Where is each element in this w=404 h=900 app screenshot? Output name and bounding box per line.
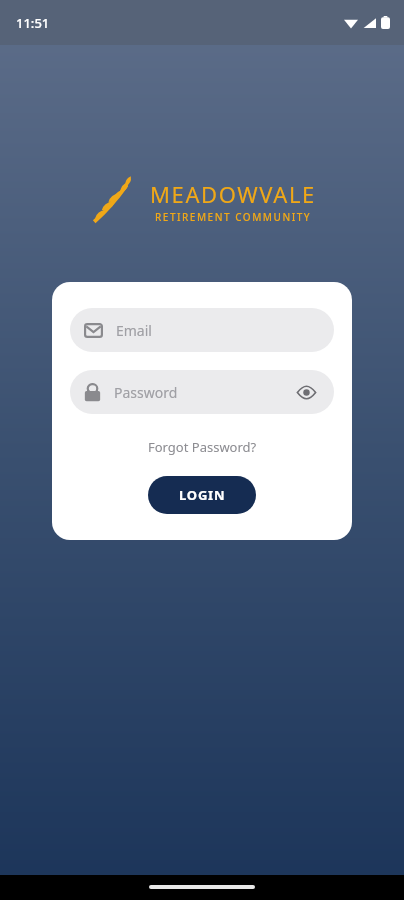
staticText: Password <box>114 383 292 402</box>
staticText: Forgot Password? <box>148 438 257 456</box>
staticText: 11:51 <box>16 14 50 32</box>
button[interactable]: Show password <box>292 378 320 406</box>
button[interactable]: Forgot Password? <box>142 436 263 458</box>
staticText: Email <box>116 321 320 340</box>
staticText: LOGIN <box>179 486 226 504</box>
staticText: RETIREMENT COMMUNITY <box>155 210 312 224</box>
staticText: MEADOWVALE <box>150 179 316 209</box>
button[interactable]: Password <box>70 370 334 414</box>
button[interactable]: Email <box>70 308 334 352</box>
button[interactable]: LOGIN <box>148 476 256 514</box>
